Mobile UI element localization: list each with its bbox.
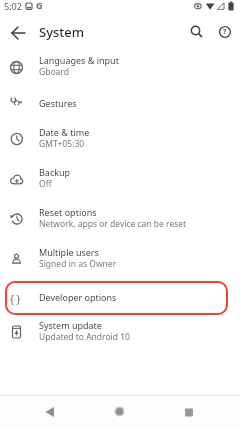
- staticText: Updated to Android 10: [39, 331, 130, 343]
- staticText: ?: [223, 27, 227, 37]
- button[interactable]: [4, 22, 32, 44]
- button[interactable]: Gestures: [0, 81, 240, 121]
- button[interactable]: [186, 21, 208, 43]
- staticText: { }: [10, 292, 21, 306]
- button[interactable]: Backup: [0, 159, 240, 199]
- button[interactable]: Developer options: [0, 278, 240, 318]
- staticText: Developer options: [39, 291, 117, 303]
- staticText: Network, apps or device can be reset: [39, 218, 187, 230]
- staticText: Signed in as Owner: [39, 258, 117, 270]
- staticText: Date & time: [39, 126, 90, 138]
- button[interactable]: ?: [218, 25, 232, 39]
- button[interactable]: Reset options: [0, 199, 240, 239]
- staticText: Off: [39, 178, 52, 190]
- staticText: Languages & input: [39, 54, 119, 66]
- button[interactable]: [108, 400, 132, 424]
- staticText: System: [39, 23, 85, 41]
- staticText: Gestures: [39, 97, 77, 109]
- button[interactable]: Multiple users: [0, 239, 240, 279]
- staticText: Backup: [39, 166, 71, 178]
- button[interactable]: [38, 400, 62, 424]
- button[interactable]: [177, 400, 201, 424]
- staticText: G: [36, 0, 43, 11]
- button[interactable]: Date & time: [0, 119, 240, 159]
- staticText: System update: [39, 319, 102, 331]
- button[interactable]: System update: [0, 312, 240, 352]
- button[interactable]: Languages & input: [0, 47, 240, 87]
- staticText: Gboard: [39, 66, 69, 78]
- staticText: Reset options: [39, 206, 97, 218]
- staticText: GMT+05:30: [39, 138, 85, 150]
- staticText: 5:02: [4, 0, 22, 12]
- staticText: Multiple users: [39, 246, 99, 258]
